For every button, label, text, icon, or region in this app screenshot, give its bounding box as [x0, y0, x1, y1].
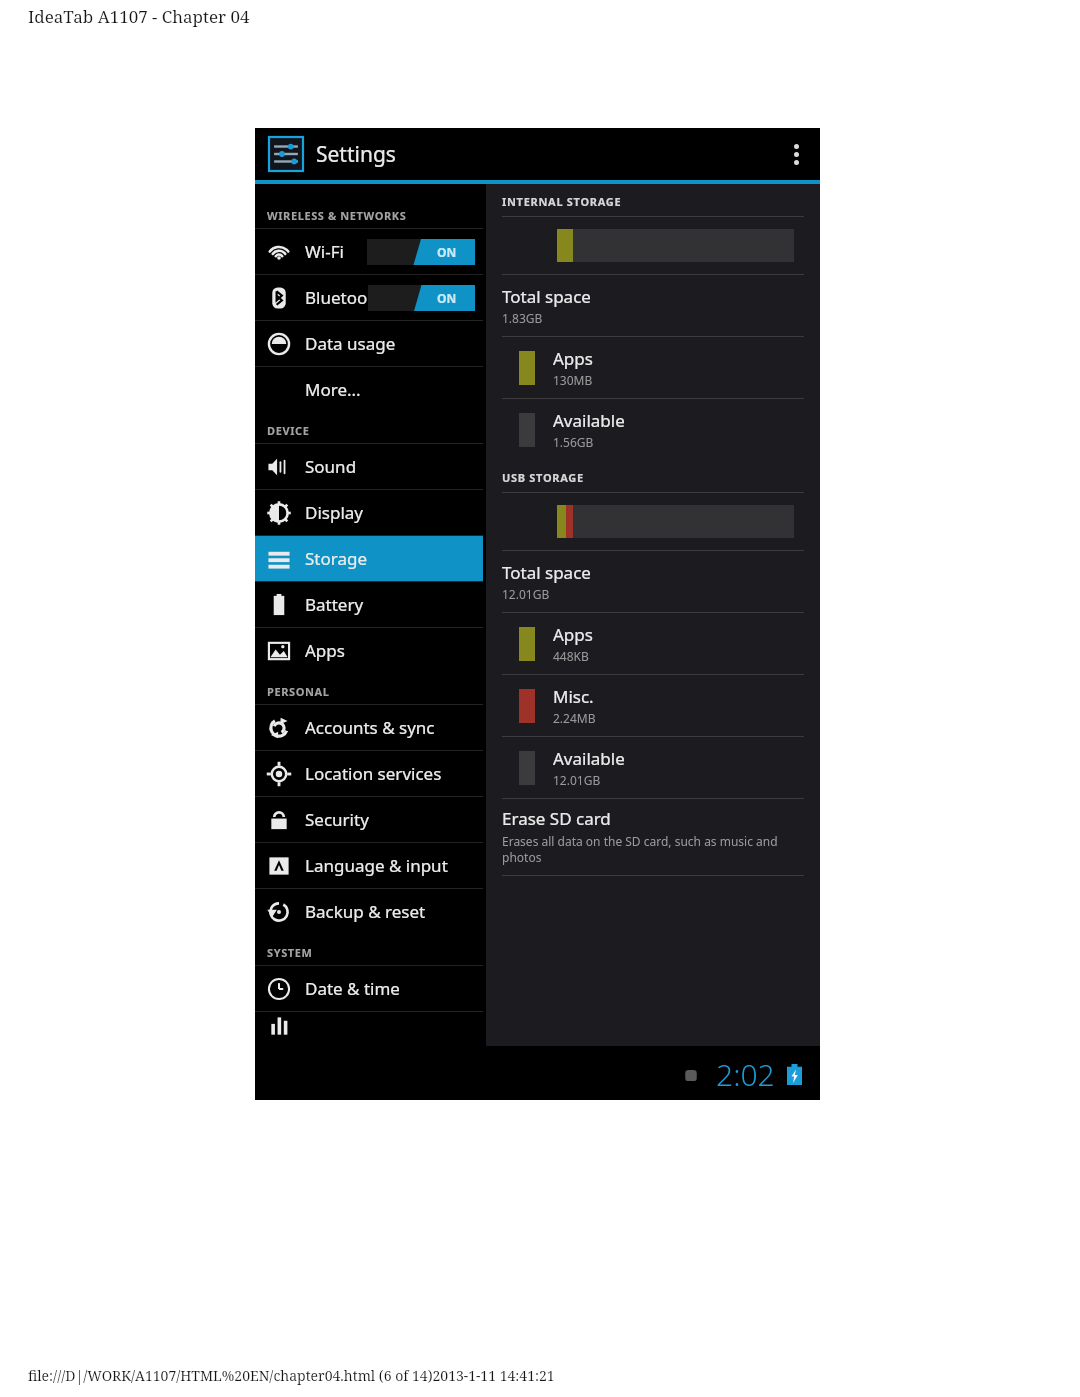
staticText: IdeaTab A1107 - Chapter 04	[28, 5, 250, 28]
button[interactable]: Battery	[255, 582, 483, 627]
staticText: USB STORAGE	[502, 470, 584, 485]
staticText: More...	[305, 378, 361, 401]
button[interactable]: Language & input	[255, 843, 483, 888]
button[interactable]: Date & time	[255, 966, 483, 1011]
button[interactable]: Sound	[255, 444, 483, 489]
staticText: DEVICE	[267, 423, 310, 438]
staticText: 130MB	[553, 372, 593, 388]
staticText: SYSTEM	[267, 945, 313, 960]
staticText: Available	[553, 747, 625, 770]
button[interactable]: Apps	[486, 337, 820, 398]
button[interactable]: Settings	[255, 128, 820, 180]
staticText: Backup & reset	[305, 900, 426, 923]
button[interactable]: Available	[486, 399, 820, 460]
button[interactable]	[255, 1012, 483, 1042]
button[interactable]: Apps	[255, 628, 483, 673]
button[interactable]: Display	[255, 490, 483, 535]
staticText: ON	[437, 290, 457, 306]
staticText: 448KB	[553, 648, 589, 664]
staticText: Accounts & sync	[305, 716, 435, 739]
staticText: Battery	[305, 593, 364, 616]
button[interactable]: Wi-Fi	[255, 229, 483, 274]
staticText: Misc.	[553, 685, 594, 708]
staticText: Total space	[502, 561, 591, 584]
staticText: Total space	[502, 285, 591, 308]
button[interactable]: Backup & reset	[255, 889, 483, 934]
staticText: Available	[553, 409, 625, 432]
button[interactable]: Total space	[486, 551, 820, 612]
staticText: Location services	[305, 762, 442, 785]
staticText: 1.56GB	[553, 434, 594, 450]
staticText: file:///D|/WORK/A1107/HTML%20EN/chapter0…	[28, 1366, 555, 1385]
button[interactable]: Location services	[255, 751, 483, 796]
button[interactable]: Accounts & sync	[255, 705, 483, 750]
staticText: 2.24MB	[553, 710, 596, 726]
staticText: Security	[305, 808, 369, 831]
staticText: Apps	[553, 347, 593, 370]
staticText: Erase SD card	[502, 807, 611, 830]
staticText: Data usage	[305, 332, 396, 355]
button[interactable]: Apps	[486, 613, 820, 674]
staticText: Bluetoo	[305, 286, 368, 309]
staticText: Apps	[553, 623, 593, 646]
button[interactable]: More options	[772, 130, 820, 178]
staticText: ON	[437, 244, 457, 260]
staticText: Date & time	[305, 977, 400, 1000]
staticText: 2:02	[716, 1054, 775, 1095]
staticText: INTERNAL STORAGE	[502, 194, 622, 209]
staticText: Settings	[316, 140, 396, 169]
staticText: PERSONAL	[267, 684, 330, 699]
staticText: Display	[305, 501, 363, 524]
staticText: Apps	[305, 639, 345, 662]
button[interactable]: Erase SD card	[486, 799, 820, 875]
staticText: Storage	[305, 547, 368, 570]
staticText: Sound	[305, 455, 357, 478]
staticText: Wi-Fi	[305, 240, 344, 263]
button[interactable]: More...	[255, 367, 483, 412]
button[interactable]: Security	[255, 797, 483, 842]
button[interactable]: Misc.	[486, 675, 820, 736]
staticText: 12.01GB	[502, 586, 550, 602]
button[interactable]: Available	[486, 737, 820, 798]
staticText: 12.01GB	[553, 772, 601, 788]
other: Battery charging	[787, 1064, 802, 1085]
staticText: WIRELESS & NETWORKS	[267, 208, 407, 223]
button[interactable]: Home	[678, 1062, 704, 1088]
staticText: Language & input	[305, 854, 448, 877]
staticText: Erases all data on the SD card, such as …	[502, 833, 806, 865]
button[interactable]: Data usage	[255, 321, 483, 366]
button[interactable]: Bluetoo	[255, 275, 483, 320]
button[interactable]: Storage	[255, 536, 483, 581]
staticText: 1.83GB	[502, 310, 543, 326]
button[interactable]: Total space	[486, 275, 820, 336]
